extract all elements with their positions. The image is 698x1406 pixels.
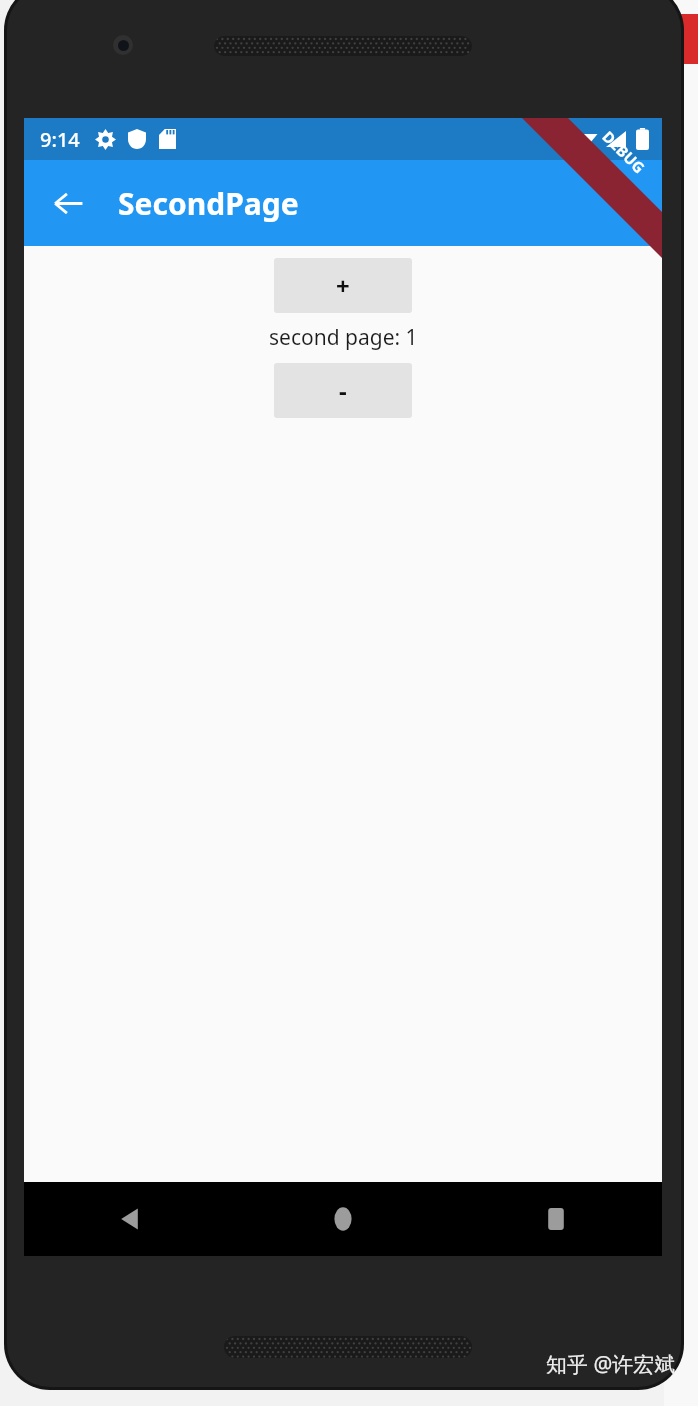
staticText: - [339,374,347,407]
button[interactable]: Back [24,1182,236,1256]
staticText: DEBUG [598,126,649,177]
button[interactable]: Recents [449,1182,662,1256]
button[interactable]: + [274,258,412,313]
staticText: second page: 1 [269,323,418,352]
staticText: 9:14 [40,126,80,153]
staticText: SecondPage [118,183,299,224]
button[interactable]: Home [236,1182,449,1256]
staticText: 知乎 @许宏斌 [546,1350,676,1379]
button[interactable]: - [274,363,412,418]
staticText: + [336,269,350,302]
button[interactable]: Back [44,179,92,227]
